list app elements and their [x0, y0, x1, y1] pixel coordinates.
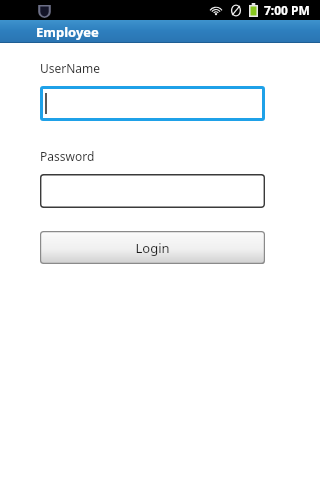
button[interactable]: Login: [40, 231, 265, 264]
staticText: Employee: [36, 23, 99, 41]
staticText: UserName: [40, 60, 101, 76]
staticText: Login: [135, 239, 170, 257]
staticText: 7:00 PM: [264, 2, 310, 18]
button[interactable]: UserName input: [40, 86, 265, 121]
button[interactable]: Password input: [40, 174, 265, 208]
staticText: Password: [40, 148, 95, 164]
